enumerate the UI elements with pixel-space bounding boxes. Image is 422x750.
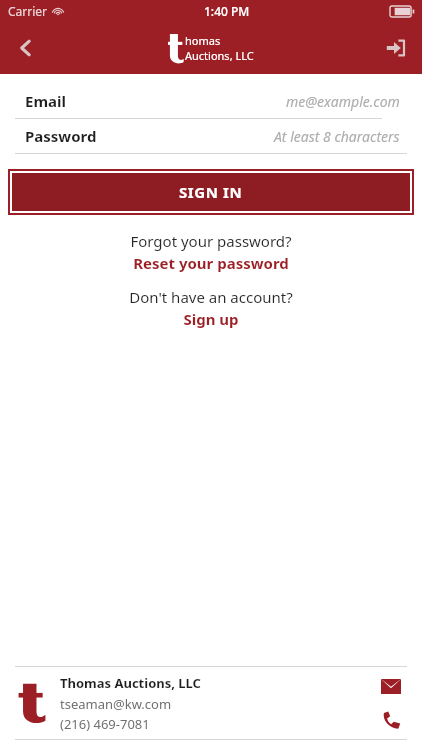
button[interactable]: Call <box>378 707 404 733</box>
staticText: homas <box>185 33 221 48</box>
button[interactable]: Email <box>0 84 422 119</box>
button[interactable]: Sign in <box>370 22 422 74</box>
button[interactable]: Email <box>378 673 404 699</box>
staticText: me@example.com <box>286 92 400 111</box>
staticText: Reset your password <box>133 253 289 273</box>
button[interactable]: SIGN IN <box>12 173 410 211</box>
button[interactable]: Reset your password <box>133 253 289 273</box>
staticText: Password <box>25 126 97 146</box>
staticText: Carrier <box>8 3 48 19</box>
staticText: (216) 469-7081 <box>60 715 150 733</box>
staticText: Forgot your password? <box>130 231 292 251</box>
staticText: Auctions, LLC <box>185 48 254 63</box>
button[interactable]: Sign up <box>183 309 239 329</box>
staticText: Thomas Auctions, LLC <box>60 674 201 692</box>
staticText: Don't have an account? <box>129 287 293 307</box>
staticText: 1:40 PM <box>204 3 250 19</box>
staticText: Email <box>25 91 66 111</box>
staticText: SIGN IN <box>179 182 243 202</box>
button[interactable]: Back <box>0 22 52 74</box>
staticText: At least 8 characters <box>274 127 400 146</box>
staticText: tseaman@kw.com <box>60 695 172 713</box>
button[interactable]: Password <box>0 119 422 154</box>
staticText: Sign up <box>183 309 239 329</box>
